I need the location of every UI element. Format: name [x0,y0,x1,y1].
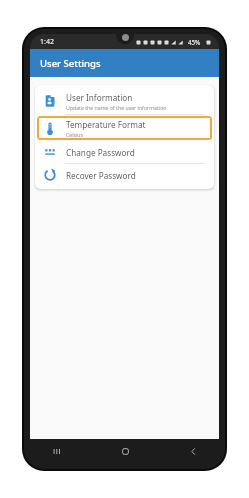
staticText: 1:42 [40,37,54,47]
button[interactable]: Recent apps [46,441,66,461]
staticText: Update the name of the user information [66,104,167,111]
button[interactable]: User Information [37,89,212,113]
button[interactable]: Change Password [37,142,212,162]
staticText: Celsius [66,131,84,138]
staticText: Change Password [66,147,135,158]
staticText: User Information [66,92,133,103]
staticText: Recover Password [66,170,136,181]
button[interactable]: Temperature Format [37,116,212,140]
button[interactable]: Recover Password [37,165,212,185]
staticText: 45% [188,38,201,46]
staticText: User Settings [40,57,101,70]
button[interactable]: Back [183,441,203,461]
staticText: Temperature Format [66,119,146,130]
button[interactable]: Home [115,441,135,461]
